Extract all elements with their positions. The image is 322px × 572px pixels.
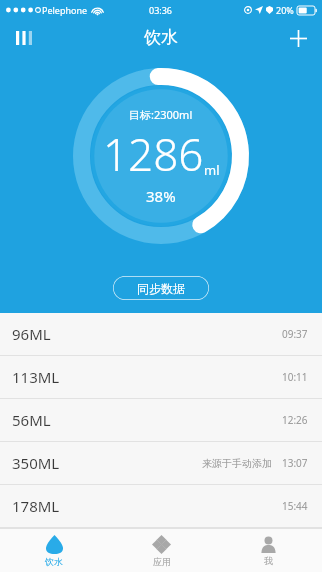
button[interactable]: 应用: [108, 529, 215, 572]
button[interactable]: 178ML: [0, 485, 322, 528]
staticText: ml: [204, 161, 220, 179]
button[interactable]: 饮水: [0, 529, 108, 572]
staticText: 我: [264, 555, 273, 566]
staticText: 12:26: [282, 413, 310, 427]
button[interactable]: Menu: [4, 20, 44, 56]
staticText: 同步数据: [137, 281, 185, 296]
button[interactable]: 56ML: [0, 399, 322, 442]
button[interactable]: 96ML: [0, 313, 322, 356]
staticText: 1286: [103, 124, 204, 184]
staticText: 03:36: [149, 4, 173, 16]
staticText: 178ML: [12, 496, 60, 516]
staticText: 目标:2300ml: [129, 107, 193, 122]
staticText: 20%: [276, 4, 294, 16]
button[interactable]: 我: [215, 529, 322, 572]
staticText: 09:37: [282, 327, 310, 341]
button[interactable]: 113ML: [0, 356, 322, 399]
staticText: 96ML: [12, 324, 51, 344]
staticText: 13:07: [282, 456, 310, 470]
staticText: 应用: [153, 556, 171, 567]
staticText: 15:44: [282, 499, 310, 513]
staticText: 饮水: [45, 556, 63, 567]
staticText: 10:11: [282, 370, 310, 384]
button[interactable]: Add: [278, 20, 318, 56]
staticText: 113ML: [12, 367, 60, 387]
staticText: Pelephone: [42, 4, 88, 16]
button[interactable]: 350ML: [0, 442, 322, 485]
staticText: 38%: [146, 186, 176, 206]
staticText: 350ML: [12, 453, 60, 473]
staticText: 来源于手动添加: [202, 457, 272, 470]
button[interactable]: 同步数据: [112, 275, 210, 301]
staticText: 56ML: [12, 410, 51, 430]
staticText: 饮水: [144, 27, 178, 48]
